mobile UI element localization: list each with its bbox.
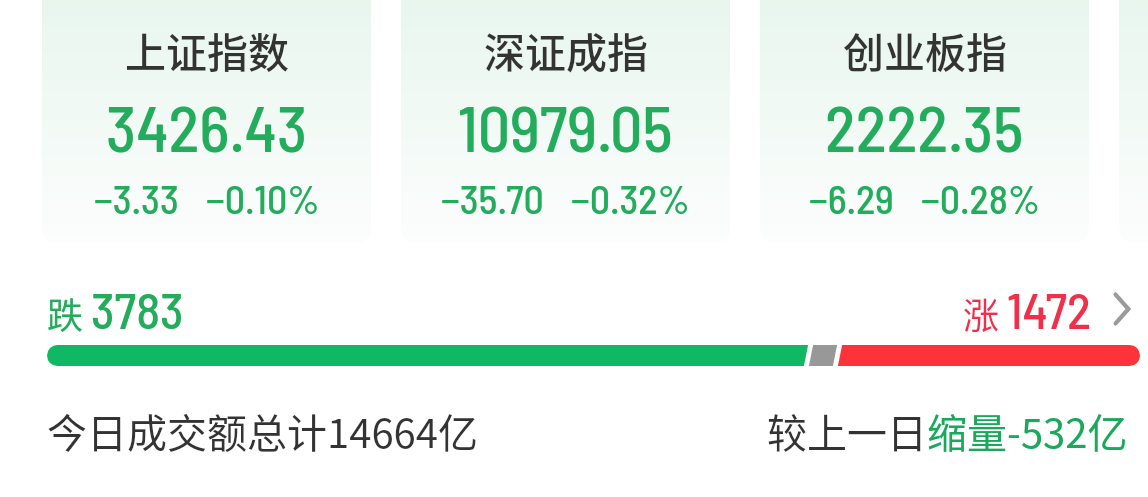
staticText: 创业板指 [843, 20, 1007, 79]
staticText: −35.70 [441, 174, 544, 222]
staticText: −0.10% [206, 174, 320, 222]
staticText: 10979.05 [458, 88, 673, 165]
button[interactable]: 科创50 index card [1119, 0, 1148, 243]
staticText: 跌 3783 [47, 279, 184, 339]
staticText: 2222.35 [825, 88, 1024, 165]
staticText: −6.29 [809, 174, 894, 222]
staticText: 3426.43 [106, 88, 308, 165]
staticText: −0.32% [571, 174, 690, 222]
staticText: −0.28% [921, 174, 1041, 222]
button[interactable]: 创业板指 [760, 0, 1089, 243]
button[interactable]: 跌 3783 [0, 277, 1148, 389]
staticText: 今日成交额总计14664亿 [47, 402, 478, 458]
staticText: 深证成指 [484, 20, 648, 79]
staticText: 涨 1472 [963, 279, 1091, 339]
button[interactable]: Open market breadth detail [1114, 293, 1130, 325]
button[interactable]: 深证成指 [401, 0, 730, 243]
staticText: −3.33 [94, 174, 179, 222]
staticText: 上证指数 [125, 20, 289, 79]
button[interactable]: 上证指数 [42, 0, 371, 243]
staticText: 较上一日缩量-532亿 [767, 402, 1128, 458]
